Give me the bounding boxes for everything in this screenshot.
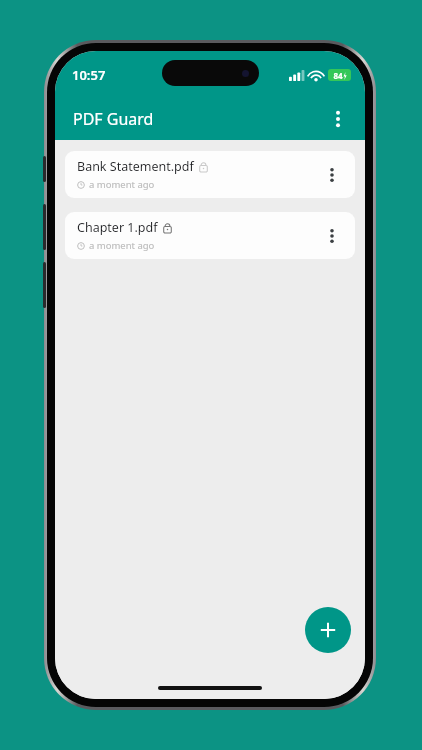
button[interactable]: File options — [315, 158, 349, 192]
staticText: Chapter 1.pdf — [77, 219, 158, 236]
button[interactable]: File options — [315, 219, 349, 253]
staticText: a moment ago — [89, 178, 155, 191]
button[interactable]: Chapter 1.pdf — [65, 212, 355, 259]
staticText: 10:57 — [72, 66, 106, 84]
button[interactable]: More options — [321, 102, 355, 136]
staticText: Bank Statement.pdf — [77, 158, 194, 175]
button[interactable]: Bank Statement.pdf — [65, 151, 355, 198]
button[interactable]: Add PDF — [305, 607, 351, 653]
staticText: a moment ago — [89, 239, 155, 252]
staticText: 84 — [333, 70, 343, 81]
staticText: PDF Guard — [73, 108, 154, 130]
